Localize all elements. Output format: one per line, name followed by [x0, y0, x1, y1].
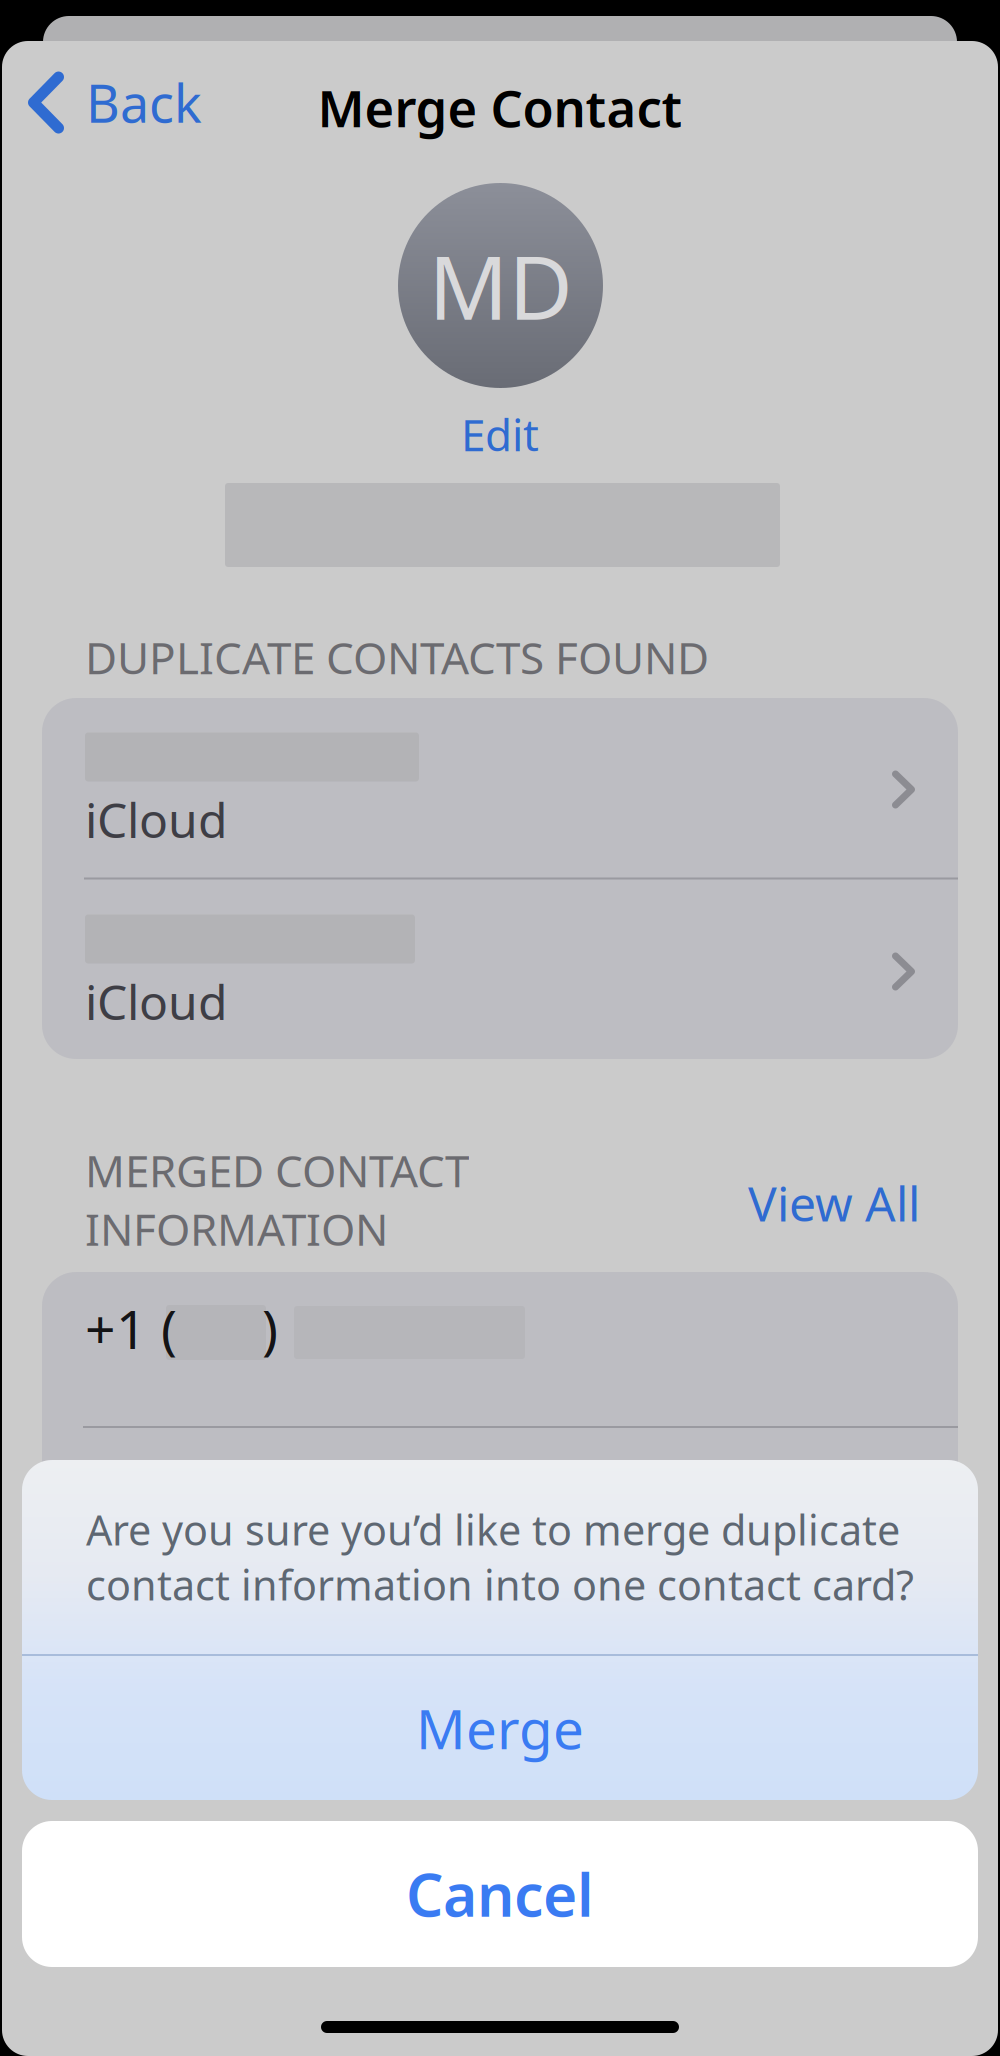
button[interactable]: Back [20, 60, 220, 145]
staticText: MERGED CONTACT INFORMATION [85, 1141, 469, 1258]
button[interactable]: iCloud [42, 697, 958, 877]
button[interactable]: Cancel [22, 1821, 978, 1967]
staticText: ) [262, 1293, 278, 1364]
staticText: Back [86, 68, 202, 137]
staticText: Merge [416, 1692, 584, 1764]
button[interactable]: View All [748, 1165, 920, 1241]
staticText: Edit [461, 405, 539, 463]
staticText: Merge Contact [317, 74, 682, 141]
button[interactable]: iCloud [42, 879, 958, 1059]
staticText: Are you sure you’d like to merge duplica… [86, 1502, 914, 1612]
staticText: iCloud [85, 969, 228, 1033]
button[interactable]: Edit [0, 399, 1000, 469]
staticText: MD [428, 227, 572, 344]
button[interactable]: Merge [22, 1656, 978, 1800]
staticText: DUPLICATE CONTACTS FOUND [85, 628, 709, 686]
staticText: Cancel [406, 1855, 594, 1933]
staticText: +1 ( [85, 1293, 177, 1364]
staticText: View All [748, 1171, 920, 1235]
staticText: iCloud [85, 787, 228, 851]
